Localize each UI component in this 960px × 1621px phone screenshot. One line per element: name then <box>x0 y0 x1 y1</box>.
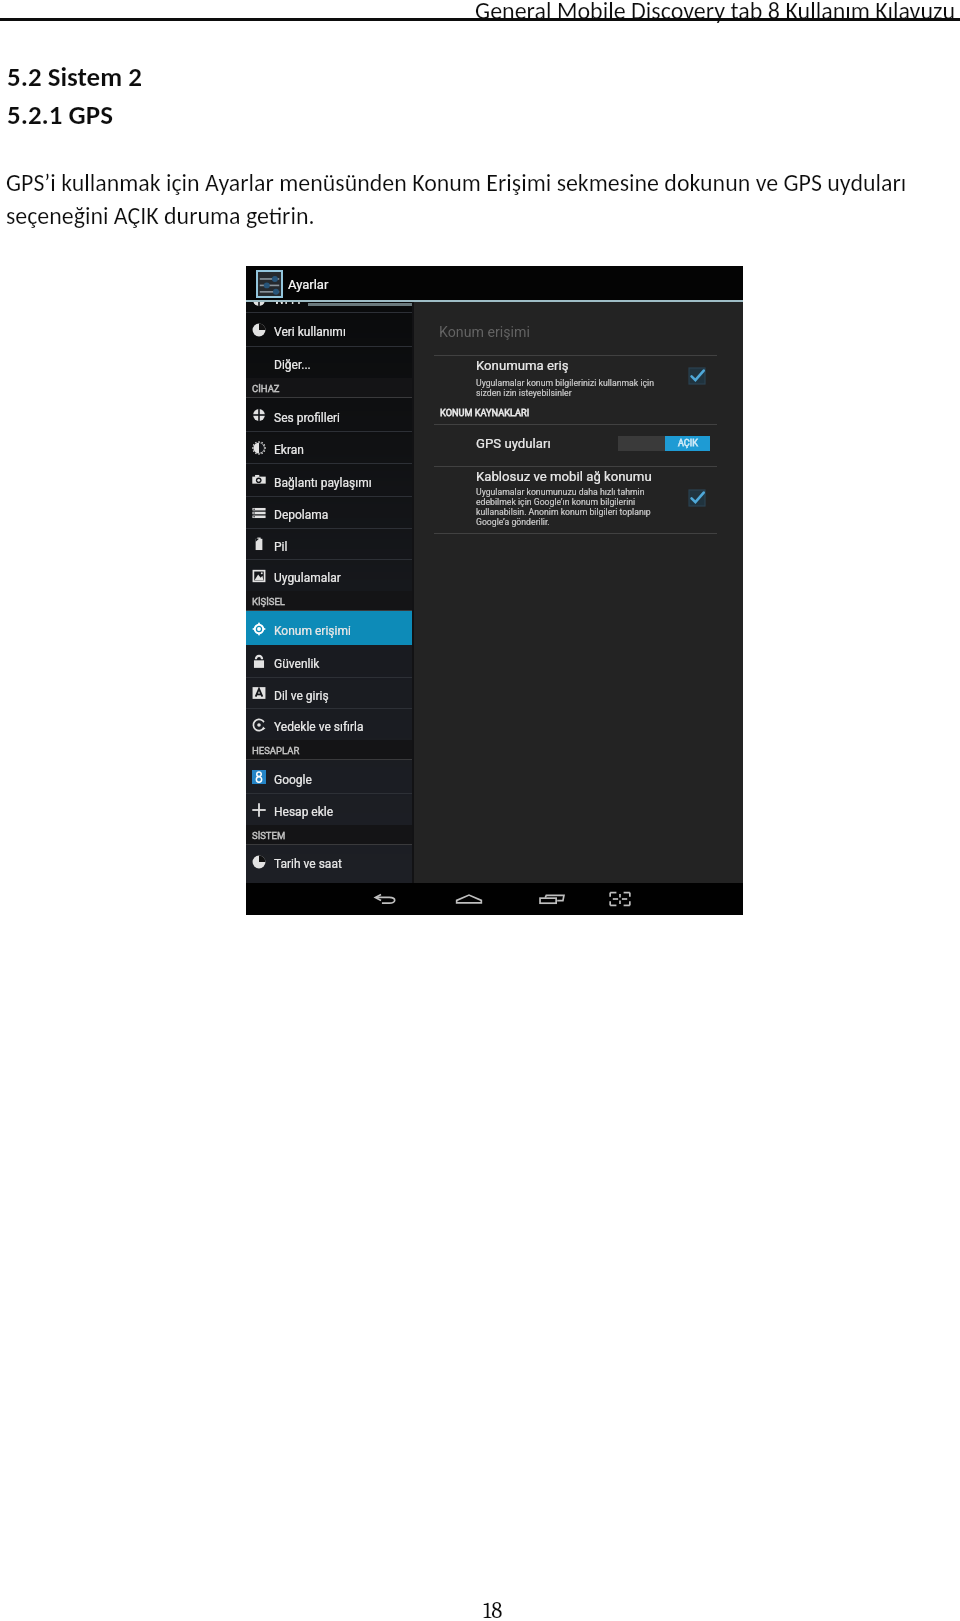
staticText: 5.2 Sistem 2 <box>7 60 142 93</box>
button[interactable]: Ses profilleri <box>246 398 412 431</box>
button[interactable]: Konumuma eriş <box>414 356 743 408</box>
staticText: CİHAZ <box>252 383 280 394</box>
staticText: 18 <box>483 1597 503 1621</box>
staticText: Dil ve giriş <box>274 689 329 703</box>
staticText: HESAPLAR <box>252 745 300 756</box>
staticText: KONUM KAYNAKLARI <box>440 407 530 418</box>
staticText: Google <box>274 773 312 787</box>
button[interactable]: Konum erişimi <box>246 611 412 645</box>
staticText: Yedekle ve sıfırla <box>274 720 364 734</box>
staticText: Pil <box>274 540 288 554</box>
button[interactable]: Veri kullanımı <box>246 312 412 346</box>
staticText: Veri kullanımı <box>274 325 346 339</box>
staticText: Diğer... <box>274 358 311 372</box>
button[interactable]: Home <box>453 883 485 915</box>
staticText: Güvenlik <box>274 657 320 671</box>
button[interactable]: Back <box>369 883 401 915</box>
button[interactable]: Tarih ve saat <box>246 845 412 877</box>
staticText: Uygulamalar konum bilgilerinizi kullanma… <box>476 378 654 398</box>
button[interactable]: Güvenlik <box>246 645 412 677</box>
staticText: Konum erişimi <box>439 324 530 341</box>
staticText: Ses profilleri <box>274 411 341 425</box>
button[interactable]: Yedekle ve sıfırla <box>246 708 412 740</box>
staticText: Uygulamalar konumunuzu daha hızlı tahmin… <box>476 487 651 527</box>
button[interactable]: Depolama <box>246 496 412 528</box>
staticText: Wi-Fi <box>274 302 301 307</box>
staticText: Konum erişimi <box>274 624 351 638</box>
button[interactable]: Bağlantı paylaşımı <box>246 463 412 496</box>
staticText: Depolama <box>274 508 329 522</box>
button[interactable]: Ekran <box>246 431 412 463</box>
button[interactable]: Uygulamalar <box>246 559 412 591</box>
button[interactable]: Google <box>246 760 412 793</box>
button[interactable]: GPS uyduları <box>414 425 743 466</box>
staticText: Uygulamalar <box>274 571 341 585</box>
staticText: Konumuma eriş <box>476 358 569 373</box>
staticText: General Mobile Discovery tab 8 Kullanım … <box>0 0 955 25</box>
staticText: AÇIK <box>678 438 698 449</box>
button[interactable]: Kablosuz ve mobil ağ konumu <box>414 467 743 533</box>
button[interactable]: Recents <box>536 883 568 915</box>
button[interactable]: Hesap ekle <box>246 793 412 825</box>
staticText: Hesap ekle <box>274 805 334 819</box>
staticText: KİŞİSEL <box>252 596 285 607</box>
staticText: Bağlantı paylaşımı <box>274 476 372 490</box>
staticText: Ayarlar <box>288 277 329 292</box>
staticText: Kablosuz ve mobil ağ konumu <box>476 469 652 484</box>
button[interactable]: AÇIK <box>618 436 710 451</box>
staticText: Tarih ve saat <box>274 857 342 871</box>
button[interactable]: Screenshot <box>604 883 636 915</box>
staticText: GPS’i kullanmak için Ayarlar menüsünden … <box>6 168 956 230</box>
button[interactable]: Pil <box>246 528 412 559</box>
button[interactable]: Diğer... <box>246 346 412 378</box>
staticText: 5.2.1 GPS <box>7 98 113 131</box>
staticText: SİSTEM <box>252 830 286 841</box>
button[interactable]: Dil ve giriş <box>246 677 412 708</box>
staticText: Ekran <box>274 443 304 457</box>
staticText: GPS uyduları <box>476 436 551 451</box>
